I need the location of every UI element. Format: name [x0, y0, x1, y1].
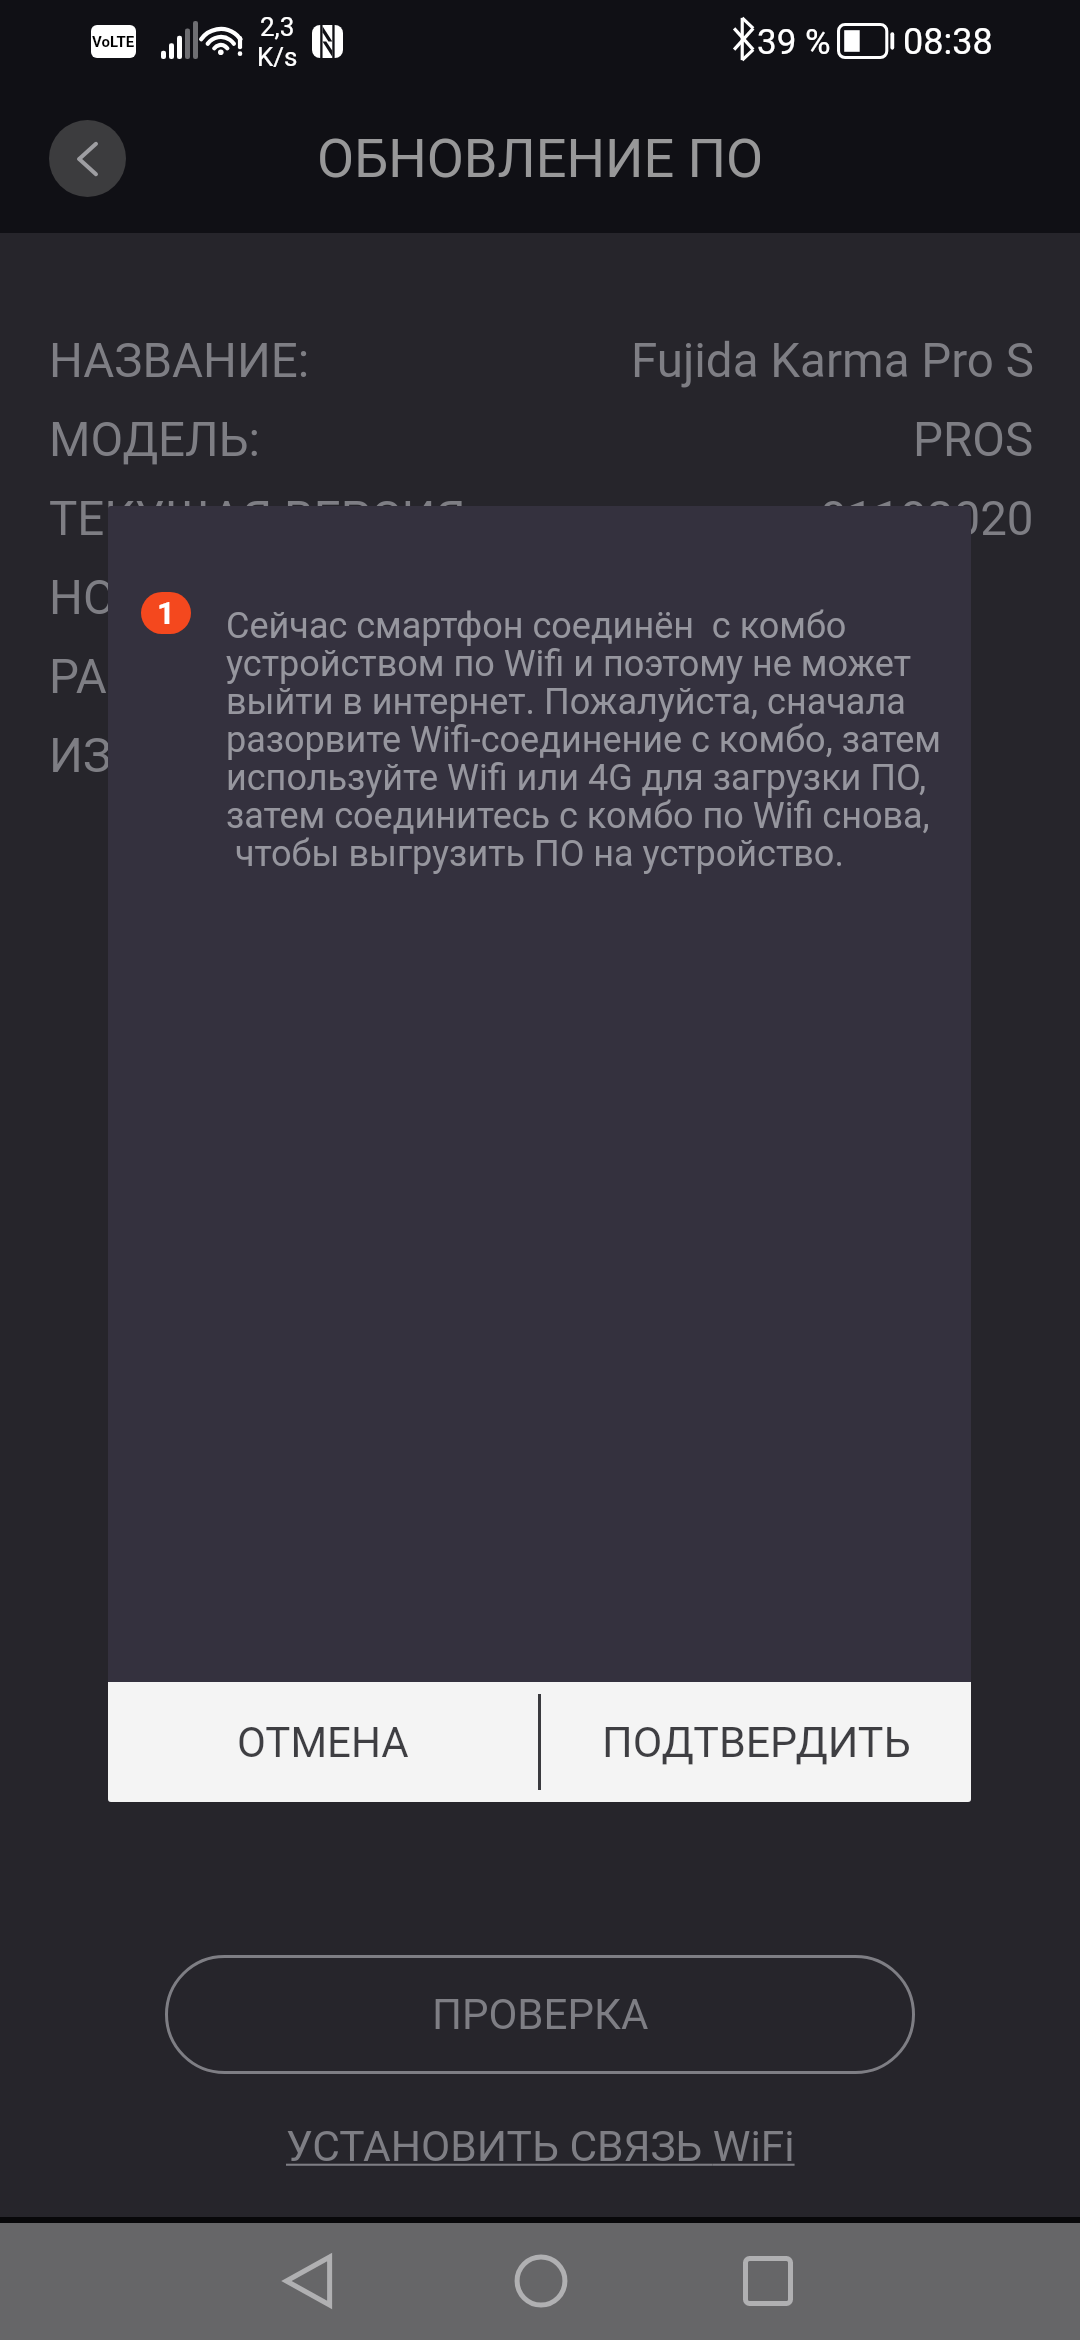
staticText: PROS	[913, 412, 1034, 468]
staticText: ИЗМЕНЕНИЯ	[49, 728, 339, 784]
staticText: K/s	[257, 42, 297, 72]
staticText: 39 %	[757, 22, 831, 63]
staticText: ПРОВЕРКА	[432, 1990, 649, 2039]
button[interactable]: Recents	[708, 2241, 828, 2321]
staticText: МОДЕЛЬ:	[49, 412, 261, 468]
staticText: НОВАЯ ВЕРСИЯ	[49, 570, 400, 626]
button[interactable]: ПОДТВЕРДИТЬ	[541, 1682, 971, 1802]
button[interactable]: Navigate back	[248, 2241, 368, 2321]
staticText: 1	[157, 595, 175, 631]
staticText: 01102020	[820, 491, 1034, 547]
staticText: Fujida Karma Pro S	[631, 333, 1034, 389]
button[interactable]: ПРОВЕРКА	[165, 1955, 915, 2074]
staticText: VoLTE	[92, 33, 135, 51]
button[interactable]: Back	[49, 120, 126, 197]
staticText: Сейчас смартфон соединён с комбо устройс…	[226, 605, 971, 875]
staticText: УСТАНОВИТЬ СВЯЗЬ WiFi	[286, 2122, 795, 2172]
button[interactable]: УСТАНОВИТЬ СВЯЗЬ WiFi	[272, 2114, 809, 2180]
staticText: ОТМЕНА	[237, 1718, 409, 1767]
staticText: РАЗМЕР	[49, 649, 234, 705]
button[interactable]: ОТМЕНА	[108, 1682, 538, 1802]
staticText: НАЗВАНИЕ:	[49, 333, 310, 389]
staticText: ОБНОВЛЕНИЕ ПО	[317, 127, 764, 190]
button[interactable]: Home	[481, 2241, 601, 2321]
staticText: ТЕКУЩАЯ ВЕРСИЯ	[49, 491, 466, 547]
staticText: 08:38	[903, 21, 993, 63]
staticText: ПОДТВЕРДИТЬ	[602, 1717, 911, 1767]
staticText: 2,3	[260, 12, 295, 42]
